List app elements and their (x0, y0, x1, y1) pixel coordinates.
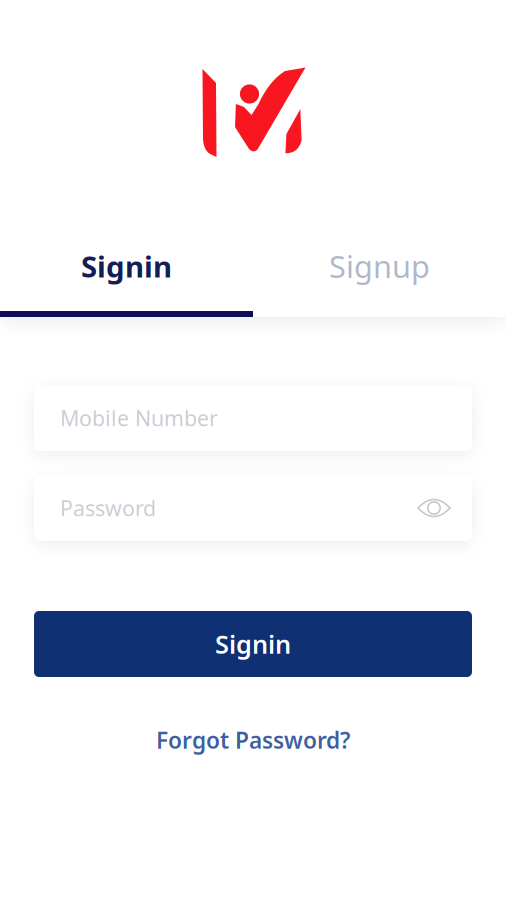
staticText: Forgot Password? (156, 725, 350, 755)
button[interactable]: Signup (253, 231, 506, 301)
staticText: Signin (215, 627, 291, 661)
button[interactable]: Signin (34, 611, 472, 677)
staticText: Signin (81, 246, 172, 285)
staticText: Password (60, 494, 156, 522)
staticText: Signup (329, 246, 430, 286)
button[interactable]: Signin (0, 231, 253, 301)
button[interactable]: Forgot Password? (103, 723, 403, 757)
button[interactable]: Show password (414, 488, 454, 528)
staticText: Mobile Number (60, 404, 218, 432)
